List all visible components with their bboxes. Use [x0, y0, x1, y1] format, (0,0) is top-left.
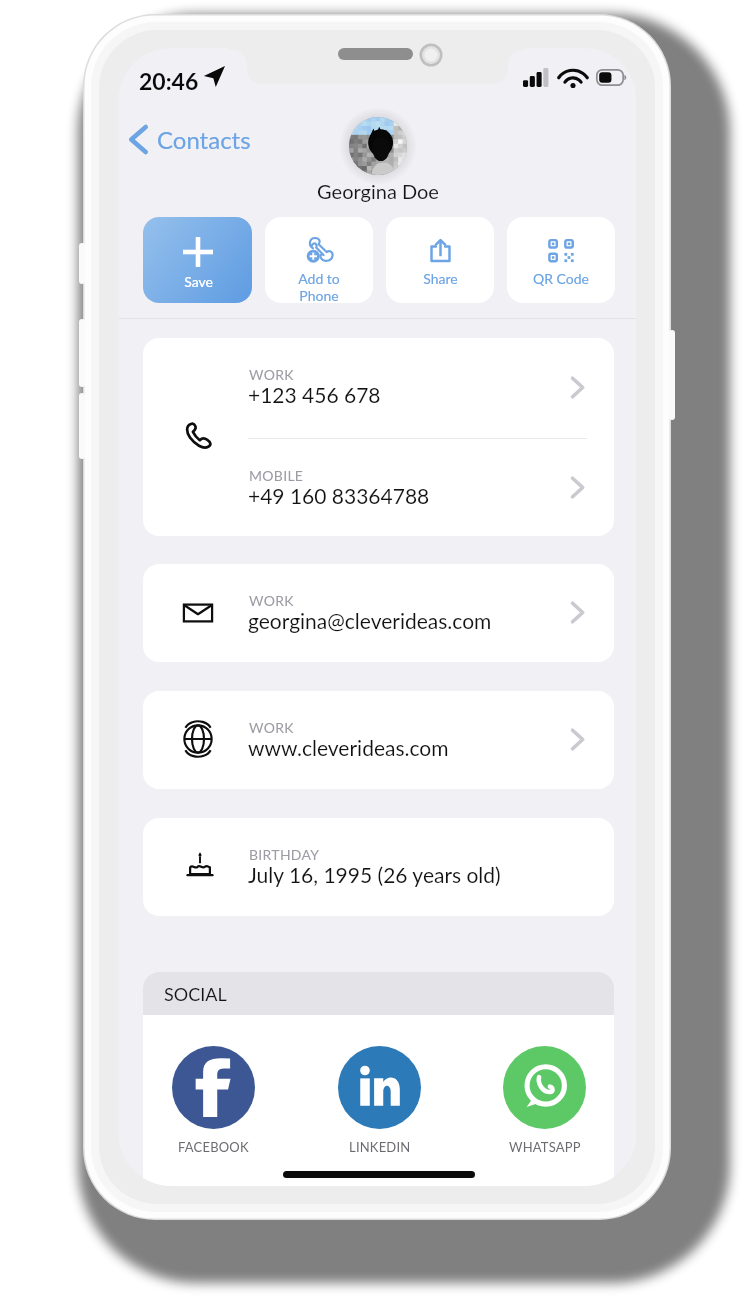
staticText: Share	[423, 270, 458, 287]
staticText: WORK	[249, 592, 294, 609]
button[interactable]: WORK	[143, 691, 614, 789]
button[interactable]: Share	[386, 217, 494, 303]
staticText: SOCIAL	[164, 983, 227, 1005]
staticText: MOBILE	[249, 467, 304, 484]
button[interactable]: FACEBOOK	[143, 1046, 296, 1155]
button[interactable]: QR Code	[507, 217, 615, 303]
staticText: July 16, 1995 (26 years old)	[248, 862, 501, 887]
staticText: Georgina Doe	[119, 179, 637, 203]
staticText: Add to Phone	[298, 270, 340, 303]
staticText: +123 456 678	[248, 382, 381, 407]
staticText: WORK	[249, 719, 294, 736]
other: Open	[571, 477, 584, 498]
button[interactable]: BIRTHDAY	[143, 818, 614, 916]
staticText: georgina@cleverideas.com	[248, 608, 492, 633]
button[interactable]: WHATSAPP	[462, 1046, 614, 1155]
staticText: www.cleverideas.com	[248, 735, 449, 760]
other: Open	[571, 729, 584, 750]
button[interactable]: Add to Phone	[265, 217, 373, 303]
button[interactable]: MOBILE	[143, 439, 614, 536]
staticText: BIRTHDAY	[249, 846, 320, 863]
other: Open	[571, 602, 584, 623]
button[interactable]: LINKEDIN	[297, 1046, 462, 1155]
staticText: WHATSAPP	[509, 1139, 581, 1155]
staticText: LINKEDIN	[349, 1139, 411, 1155]
other: Open	[571, 377, 584, 398]
staticText: 20:46	[139, 67, 199, 95]
button[interactable]: WORK	[143, 564, 614, 662]
button[interactable]: Save	[143, 217, 252, 303]
staticText: FACEBOOK	[178, 1139, 249, 1155]
staticText: +49 160 83364788	[248, 483, 430, 508]
button[interactable]: Contacts	[123, 120, 257, 159]
staticText: Contacts	[157, 125, 251, 154]
staticText: QR Code	[533, 270, 589, 287]
staticText: WORK	[249, 366, 294, 383]
staticText: Save	[184, 273, 213, 290]
button[interactable]: WORK	[143, 338, 614, 438]
